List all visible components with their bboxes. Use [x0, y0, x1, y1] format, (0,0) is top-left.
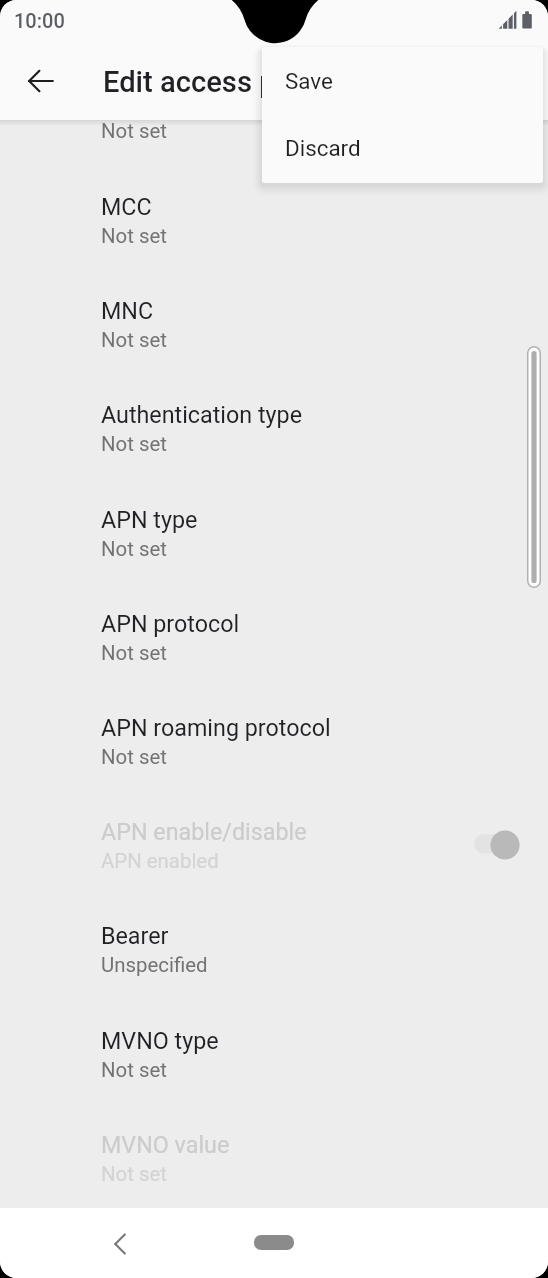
button[interactable]: APN enable/disable — [0, 783, 548, 887]
button[interactable]: APN roaming protocol — [0, 679, 548, 783]
button[interactable]: Save — [262, 51, 543, 118]
staticText: APN protocol — [101, 610, 240, 637]
staticText: Not set — [101, 119, 167, 143]
button[interactable]: APN enable/disable toggle — [462, 820, 534, 870]
staticText: Save — [285, 68, 333, 94]
staticText: MVNO value — [101, 1131, 230, 1158]
button[interactable]: Home — [254, 1235, 294, 1250]
staticText: Not set — [101, 224, 167, 248]
staticText: Authentication type — [101, 401, 303, 428]
button[interactable]: APN protocol — [0, 575, 548, 679]
button[interactable]: MVNO value — [0, 1096, 548, 1200]
staticText: 10:00 — [14, 9, 65, 32]
button[interactable]: Back — [100, 1222, 144, 1266]
button[interactable]: Authentication type — [0, 366, 548, 470]
button[interactable]: Discard — [262, 118, 543, 183]
staticText: Not set — [101, 1162, 167, 1186]
staticText: APN roaming protocol — [101, 714, 331, 741]
button[interactable]: MVNO type — [0, 992, 548, 1096]
staticText: Not set — [101, 328, 167, 352]
staticText: Not set — [101, 641, 167, 665]
staticText: Bearer — [101, 922, 169, 949]
staticText: Discard — [285, 135, 361, 161]
staticText: Not set — [101, 745, 167, 769]
staticText: APN enable/disable — [101, 818, 307, 845]
staticText: APN enabled — [101, 849, 219, 873]
staticText: MCC — [101, 193, 152, 220]
button[interactable]: Bearer — [0, 887, 548, 991]
button[interactable]: MNC — [0, 262, 548, 366]
button[interactable]: Not set — [0, 120, 548, 158]
staticText: MNC — [101, 297, 154, 324]
button[interactable]: APN type — [0, 471, 548, 575]
staticText: Unspecified — [101, 953, 208, 977]
staticText: Not set — [101, 432, 167, 456]
staticText: Edit access point — [103, 65, 326, 99]
staticText: Not set — [101, 537, 167, 561]
button[interactable]: Navigate up — [19, 59, 63, 103]
staticText: Not set — [101, 1058, 167, 1082]
staticText: MVNO type — [101, 1027, 219, 1054]
staticText: APN type — [101, 506, 198, 533]
button[interactable]: MCC — [0, 158, 548, 262]
